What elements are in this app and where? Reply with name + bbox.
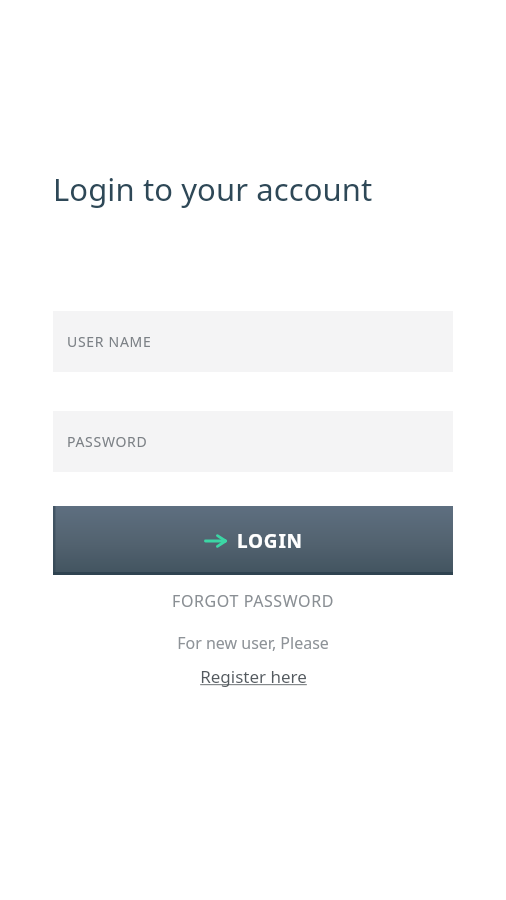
staticText: Register here (200, 665, 307, 688)
staticText: USER NAME (67, 332, 152, 351)
staticText: FORGOT PASSWORD (172, 590, 334, 612)
button[interactable]: Register here (0, 665, 506, 688)
staticText: Login to your account (53, 168, 373, 210)
staticText: PASSWORD (67, 432, 148, 451)
button[interactable]: PASSWORD (53, 411, 453, 472)
button[interactable]: USER NAME (53, 311, 453, 372)
button[interactable]: FORGOT PASSWORD (0, 590, 506, 612)
other: Login (204, 532, 228, 550)
staticText: For new user, Please (177, 632, 329, 654)
button[interactable]: Login (53, 506, 453, 575)
staticText: LOGIN (237, 528, 303, 554)
